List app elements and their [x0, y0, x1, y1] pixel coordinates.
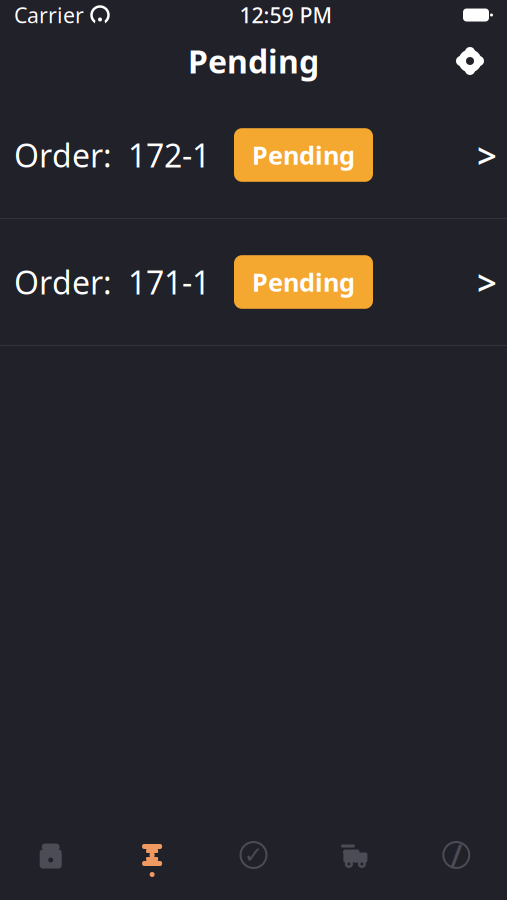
staticText: Pending	[252, 265, 355, 299]
button[interactable]: Order: 172-1	[0, 92, 507, 218]
staticText: Carrier	[14, 1, 84, 29]
staticText: >	[477, 132, 497, 178]
staticText: ✓	[244, 842, 263, 868]
staticText: Order: 171-1	[14, 261, 210, 303]
button[interactable]: Cancelled	[406, 820, 507, 900]
button[interactable]: Settings	[445, 36, 495, 86]
button[interactable]: Pending	[101, 820, 203, 900]
staticText: Pending	[188, 40, 319, 82]
button[interactable]: Home	[0, 820, 101, 900]
button[interactable]: Order: 171-1	[0, 219, 507, 345]
button[interactable]: Delivery	[304, 820, 406, 900]
staticText: >	[477, 259, 497, 305]
staticText: Pending	[252, 138, 355, 172]
staticText: /	[450, 834, 462, 876]
staticText: 12:59 PM	[239, 1, 332, 29]
button[interactable]: Completed	[203, 820, 304, 900]
staticText: Order: 172-1	[14, 134, 210, 176]
